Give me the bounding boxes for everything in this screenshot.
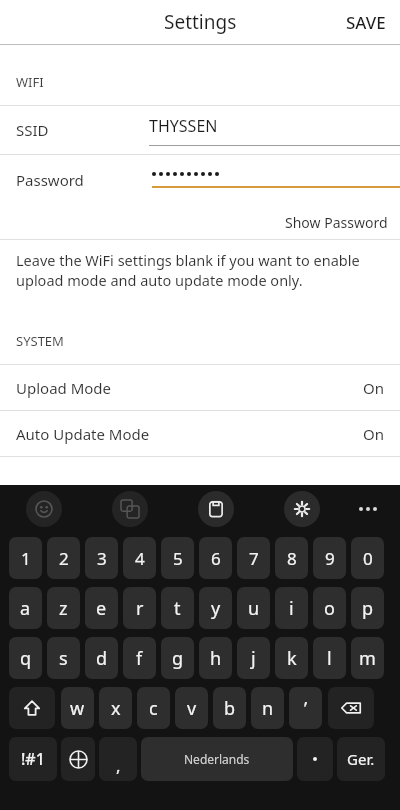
button[interactable]: 8 [275, 537, 308, 579]
staticText: Upload Mode [16, 378, 112, 398]
staticText: 3 [97, 547, 107, 570]
button[interactable]: g [161, 637, 194, 679]
staticText: k [287, 646, 297, 671]
button[interactable]: r [123, 587, 156, 629]
staticText: x [111, 696, 121, 721]
staticText: b [224, 696, 236, 721]
button[interactable]: u [237, 587, 270, 629]
button[interactable]: d [85, 637, 118, 679]
button[interactable]: y [199, 587, 232, 629]
staticText: 1 [21, 547, 31, 570]
staticText: SYSTEM [16, 332, 64, 350]
button[interactable]: 5 [161, 537, 194, 579]
staticText: g [172, 646, 184, 671]
staticText: 7 [249, 547, 259, 570]
button[interactable]: Emoji [26, 491, 62, 527]
button[interactable]: Nederlands [141, 737, 293, 781]
button[interactable]: ’ [289, 687, 322, 729]
button[interactable]: p [351, 587, 384, 629]
button[interactable]: Backspace [328, 687, 374, 729]
button[interactable]: f [123, 637, 156, 679]
button[interactable]: Ger. [337, 737, 385, 781]
button[interactable]: h [199, 637, 232, 679]
button[interactable]: 9 [313, 537, 346, 579]
staticText: r [136, 596, 144, 621]
staticText: l [327, 646, 332, 671]
button[interactable]: 2 [47, 537, 80, 579]
button[interactable]: i [275, 587, 308, 629]
button[interactable]: Change language [61, 737, 95, 781]
staticText: m [359, 646, 376, 671]
button[interactable]: 0 [351, 537, 384, 579]
staticText: Auto Update Mode [16, 424, 150, 444]
staticText: f [136, 646, 143, 671]
button[interactable]: o [313, 587, 346, 629]
button[interactable]: Shift [9, 687, 55, 729]
staticText: On [363, 378, 384, 398]
staticText: Password [16, 170, 84, 190]
staticText: SSID [16, 120, 49, 140]
staticText: Leave the WiFi settings blank if you wan… [16, 250, 360, 290]
staticText: o [324, 596, 335, 621]
button[interactable]: x [99, 687, 132, 729]
button[interactable]: Password [0, 155, 400, 205]
staticText: 6 [211, 547, 221, 570]
button[interactable]: n [251, 687, 284, 729]
button[interactable]: Keyboard settings [284, 491, 320, 527]
button[interactable]: 7 [237, 537, 270, 579]
staticText: d [96, 646, 108, 671]
button[interactable]: Translate [112, 491, 148, 527]
button[interactable]: b [213, 687, 246, 729]
staticText: y [211, 596, 221, 621]
staticText: a [20, 596, 31, 621]
staticText: SAVE [346, 11, 386, 34]
staticText: !#1 [21, 748, 45, 770]
button[interactable]: c [137, 687, 170, 729]
button[interactable]: , [99, 737, 137, 781]
staticText: q [20, 646, 32, 671]
staticText: 5 [173, 547, 183, 570]
staticText: w [70, 696, 85, 721]
staticText: j [251, 646, 256, 671]
button[interactable]: 3 [85, 537, 118, 579]
button[interactable]: j [237, 637, 270, 679]
button[interactable]: a [9, 587, 42, 629]
staticText: c [149, 696, 158, 721]
staticText: h [210, 646, 222, 671]
button[interactable]: 6 [199, 537, 232, 579]
button[interactable]: k [275, 637, 308, 679]
button[interactable]: 4 [123, 537, 156, 579]
staticText: s [59, 646, 68, 671]
staticText: n [262, 696, 274, 721]
button[interactable]: s [47, 637, 80, 679]
button[interactable]: Show Password [273, 207, 400, 238]
button[interactable]: e [85, 587, 118, 629]
button[interactable]: SAVE [332, 3, 400, 42]
button[interactable]: m [351, 637, 384, 679]
button[interactable]: More options [350, 491, 386, 527]
button[interactable]: l [313, 637, 346, 679]
staticText: , [116, 754, 121, 777]
staticText: 8 [287, 547, 297, 570]
button[interactable]: v [175, 687, 208, 729]
button[interactable]: Auto Update Mode [0, 411, 400, 456]
staticText: THYSSEN [149, 115, 218, 137]
button[interactable]: 1 [9, 537, 42, 579]
button[interactable]: z [47, 587, 80, 629]
button[interactable]: SSID [0, 106, 400, 154]
button[interactable]: t [161, 587, 194, 629]
staticText: On [363, 424, 384, 444]
staticText: ’ [304, 696, 308, 721]
button[interactable]: w [61, 687, 94, 729]
button[interactable]: Upload Mode [0, 365, 400, 410]
staticText: i [289, 596, 294, 621]
staticText: v [187, 696, 197, 721]
button[interactable]: q [9, 637, 42, 679]
staticText: u [248, 596, 260, 621]
staticText: Settings [164, 9, 237, 35]
button[interactable]: Clipboard [198, 491, 234, 527]
staticText: 4 [135, 547, 145, 570]
staticText: p [362, 596, 374, 621]
button[interactable]: !#1 [9, 737, 57, 781]
button[interactable] [297, 737, 333, 781]
